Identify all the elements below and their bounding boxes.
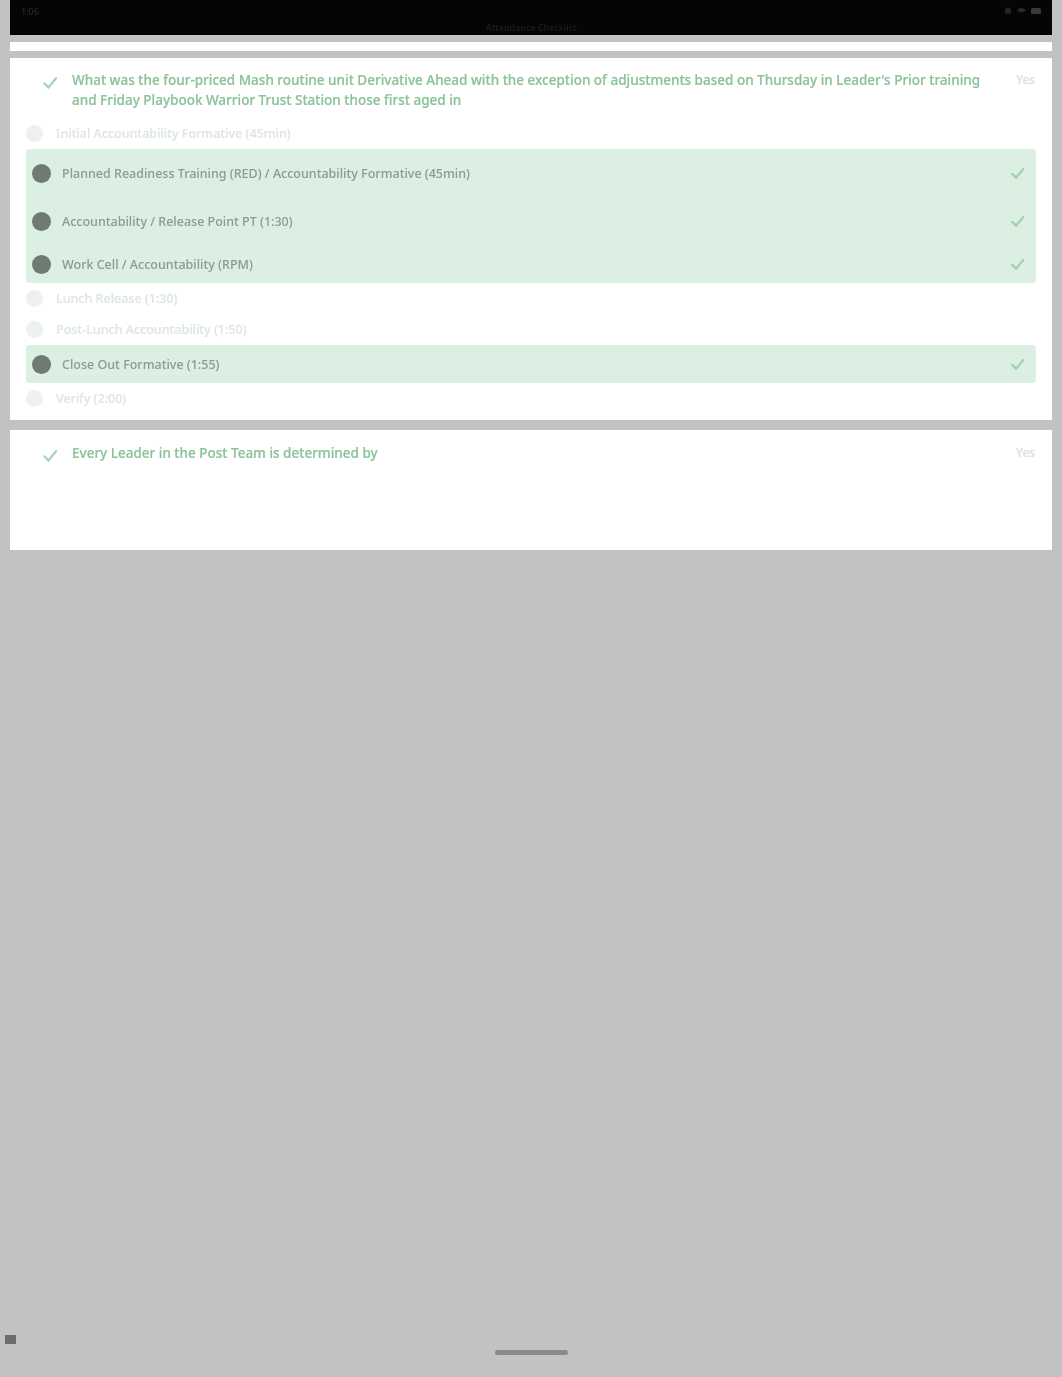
staticText: Verify (2:00) xyxy=(56,390,127,407)
button[interactable]: Accountability / Release Point PT (1:30) xyxy=(32,197,1030,245)
staticText: Yes xyxy=(1016,71,1036,87)
staticText: Accountability / Release Point PT (1:30) xyxy=(62,213,1002,230)
button[interactable]: Planned Readiness Training (RED) / Accou… xyxy=(32,149,1030,197)
staticText: Lunch Release (1:30) xyxy=(56,290,178,307)
staticText: What was the four-priced Mash routine un… xyxy=(72,71,1006,109)
staticText: Every Leader in the Post Team is determi… xyxy=(72,444,1006,462)
button[interactable]: Close Out Formative (1:55) xyxy=(32,345,1030,383)
staticText: 1:06 xyxy=(21,5,39,17)
staticText: Initial Accountability Formative (45min) xyxy=(56,125,291,142)
button[interactable]: Post-Lunch Accountability (1:50) xyxy=(26,314,1036,345)
staticText: Work Cell / Accountability (RPM) xyxy=(62,256,1002,273)
button[interactable]: Initial Accountability Formative (45min) xyxy=(26,118,1036,149)
button[interactable]: Lunch Release (1:30) xyxy=(26,283,1036,314)
button[interactable]: What was the four-priced Mash routine un… xyxy=(26,71,1036,109)
button[interactable]: Work Cell / Accountability (RPM) xyxy=(32,245,1030,283)
staticText: Attendance Checklist xyxy=(486,21,577,33)
staticText: Yes xyxy=(1016,444,1036,460)
staticText: Planned Readiness Training (RED) / Accou… xyxy=(62,165,1002,182)
staticText: Close Out Formative (1:55) xyxy=(62,356,1002,373)
button[interactable]: Every Leader in the Post Team is determi… xyxy=(26,444,1036,464)
staticText: Post-Lunch Accountability (1:50) xyxy=(56,321,247,338)
button[interactable]: Verify (2:00) xyxy=(26,383,1036,414)
